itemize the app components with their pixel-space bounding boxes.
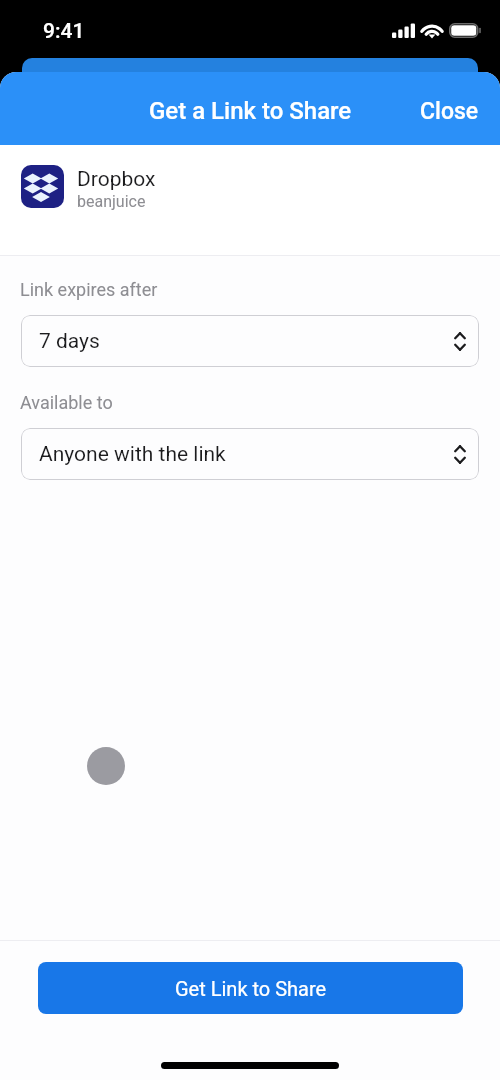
button[interactable]: Close — [399, 84, 500, 139]
staticText: 7 days — [39, 329, 100, 354]
other: Change Anyone with the link — [454, 445, 466, 464]
staticText: Dropbox — [77, 167, 156, 192]
staticText: Close — [420, 98, 479, 125]
staticText: Get Link to Share — [175, 977, 327, 1000]
button[interactable]: 7 days — [21, 315, 479, 367]
staticText: Link expires after — [20, 279, 158, 300]
button[interactable]: Dropbox — [0, 145, 500, 255]
staticText: beanjuice — [77, 192, 146, 211]
staticText: Available to — [20, 392, 113, 413]
button[interactable]: Anyone with the link — [21, 428, 479, 480]
staticText: 9:41 — [43, 19, 85, 44]
staticText: Get a Link to Share — [149, 97, 352, 125]
other: Change 7 days — [454, 332, 466, 351]
button[interactable]: Get Link to Share — [38, 962, 463, 1014]
staticText: Anyone with the link — [39, 442, 226, 467]
